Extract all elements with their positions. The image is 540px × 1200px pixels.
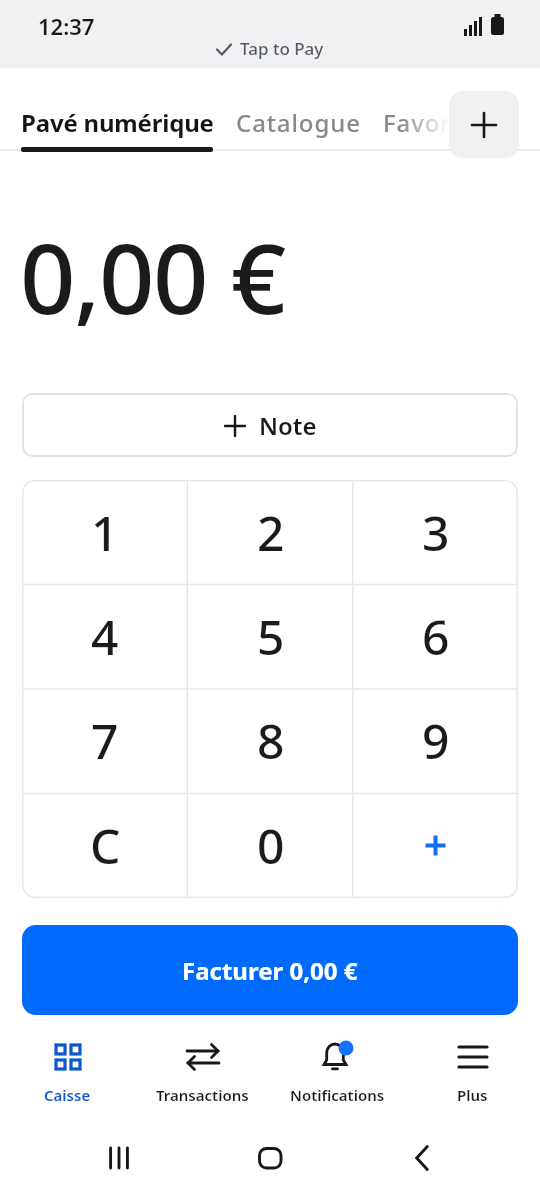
staticText: Transactions [156,1085,249,1105]
button[interactable]: 4 [22,584,188,688]
button[interactable]: 8 [188,688,353,793]
staticText: Facturer 0,00 € [182,954,358,987]
staticText: Plus [457,1085,488,1105]
button[interactable]: 0 [188,793,353,898]
button[interactable]: 6 [353,584,518,688]
staticText: 1 [91,500,119,565]
button[interactable]: Pavé numérique [21,106,214,139]
button[interactable]: 3 [353,480,518,584]
button[interactable]: Note [22,393,518,457]
button[interactable]: Facturer 0,00 € [22,925,518,1015]
staticText: Note [259,409,317,442]
button[interactable]: C [22,793,188,898]
staticText: 7 [91,708,119,773]
staticText: 0,00 € [20,210,285,342]
button[interactable] [449,91,519,158]
staticText: 5 [257,604,285,669]
button[interactable]: Notifications [270,1030,405,1115]
button[interactable]: Transactions [135,1030,270,1115]
button[interactable]: 7 [22,688,188,793]
staticText: Tap to Pay [240,37,324,60]
button[interactable]: 9 [353,688,518,793]
button[interactable]: 2 [188,480,353,584]
button[interactable]: Tap to Pay [216,37,324,60]
staticText: C [90,813,121,878]
button[interactable] [109,1147,129,1169]
button[interactable]: Favoris [383,106,472,139]
button[interactable]: Catalogue [236,106,361,139]
staticText: 4 [91,604,119,669]
staticText: 6 [422,604,450,669]
staticText: 12:37 [38,11,95,41]
staticText: 9 [422,708,450,773]
button[interactable] [415,1145,429,1171]
button[interactable]: Caisse [0,1030,135,1115]
staticText: Notifications [290,1085,385,1105]
staticText: 8 [257,708,285,773]
staticText: Caisse [44,1085,91,1105]
button[interactable]: 1 [22,480,188,584]
staticText: 0 [257,813,285,878]
button[interactable]: Plus [405,1030,540,1115]
button[interactable] [258,1147,282,1169]
button[interactable] [353,793,518,898]
button[interactable]: 5 [188,584,353,688]
staticText: 3 [422,500,450,565]
staticText: 2 [257,500,285,565]
